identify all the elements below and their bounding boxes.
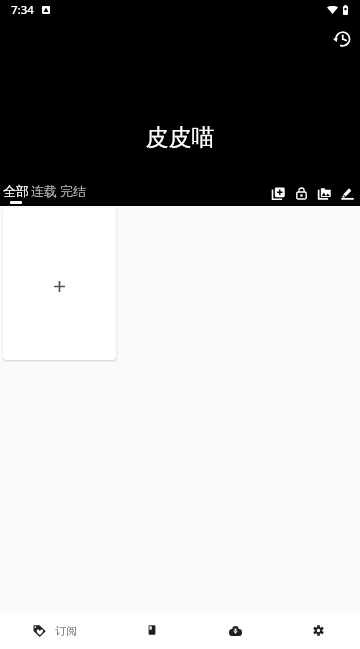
button[interactable]: 全部: [3, 183, 29, 204]
button[interactable]: History: [325, 22, 359, 56]
button[interactable]: Photo library: [313, 182, 336, 205]
staticText: 连载: [31, 183, 57, 199]
button[interactable]: Edit: [336, 182, 359, 205]
button[interactable]: Lock: [290, 182, 313, 205]
staticText: 7:34: [11, 2, 34, 18]
button[interactable]: Library: [110, 612, 194, 649]
button[interactable]: Subscriptions: [0, 612, 110, 649]
button[interactable]: Add comic: [3, 208, 116, 360]
staticText: 皮皮喵: [0, 123, 360, 152]
staticText: 全部: [3, 183, 29, 199]
button[interactable]: Downloads: [194, 612, 277, 649]
staticText: 完结: [60, 183, 86, 199]
staticText: 订阅: [55, 624, 77, 638]
button[interactable]: Settings: [277, 612, 360, 649]
button[interactable]: Add to collection: [267, 182, 290, 205]
button[interactable]: 完结: [60, 183, 86, 204]
button[interactable]: 连载: [31, 183, 57, 204]
